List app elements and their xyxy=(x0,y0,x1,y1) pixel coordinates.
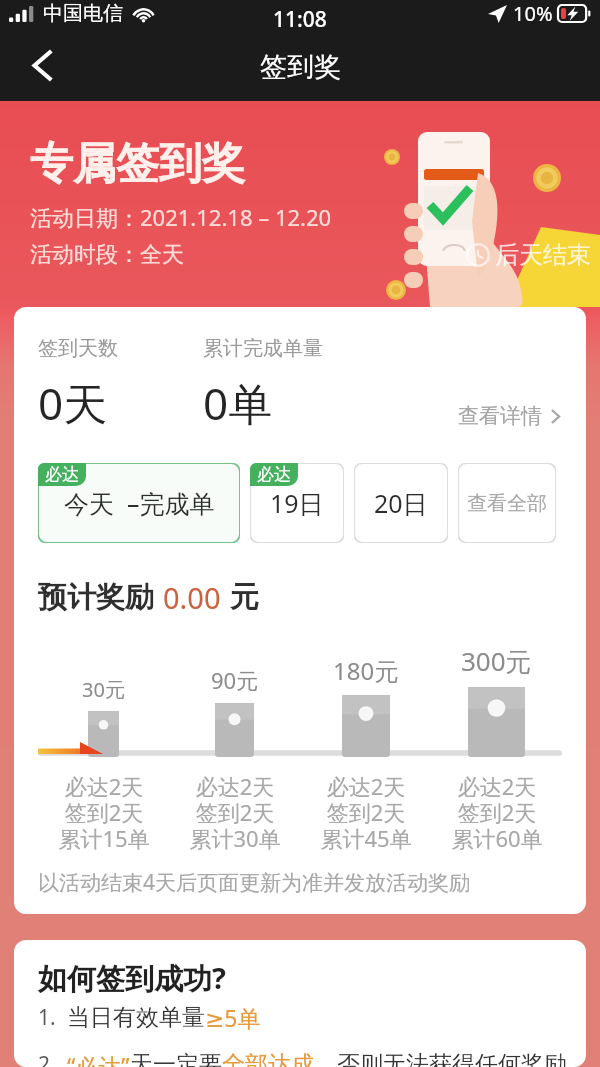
button[interactable]: 查看全部 xyxy=(458,463,556,543)
staticText: 必达2天 签到2天 累计45单 xyxy=(320,771,412,853)
staticText: 今天 –完成单 xyxy=(64,486,215,520)
staticText: ，否则无法获得任何奖励 xyxy=(314,1050,567,1067)
staticText: 以活动结束4天后页面更新为准并发放活动奖励 xyxy=(38,868,471,897)
staticText: 30元 xyxy=(82,676,125,703)
staticText: 当日有效单量 xyxy=(67,1003,205,1032)
staticText: 300元 xyxy=(461,643,532,679)
button[interactable]: 20日 xyxy=(354,463,448,543)
staticText: 查看详情 xyxy=(458,403,542,429)
staticText: 累计完成单量 xyxy=(203,336,323,361)
staticText: 20日 xyxy=(374,486,428,520)
staticText: 180元 xyxy=(333,654,399,687)
staticText: 后天结束 xyxy=(495,240,591,270)
staticText: 签到天数 xyxy=(38,336,118,361)
staticText: 0单 xyxy=(203,373,273,433)
button[interactable]: 今天 –完成单 xyxy=(38,463,240,543)
staticText: 必达 xyxy=(45,464,79,485)
staticText: 预计奖励 xyxy=(38,579,154,616)
staticText: 0天 xyxy=(38,373,108,433)
staticText: 如何签到成功? xyxy=(38,958,226,998)
button[interactable]: 19日 xyxy=(250,463,344,543)
staticText: 必达 xyxy=(257,464,291,485)
staticText: “必达” xyxy=(67,1050,130,1067)
staticText: 活动时段：全天 xyxy=(30,241,184,269)
staticText: 必达2天 签到2天 累计60单 xyxy=(451,771,543,853)
staticText: 天一定要 xyxy=(130,1050,222,1067)
button[interactable]: Back xyxy=(17,44,68,86)
staticText: 90元 xyxy=(211,665,259,695)
staticText: 2. xyxy=(38,1050,56,1067)
staticText: 19日 xyxy=(270,486,324,520)
staticText: 0.00 xyxy=(163,578,221,617)
staticText: 必达2天 签到2天 累计30单 xyxy=(189,771,281,853)
staticText: 查看全部 xyxy=(467,491,547,516)
staticText: ≥5单 xyxy=(205,1002,261,1033)
staticText: 专属签到奖 xyxy=(30,137,245,191)
staticText: 全部达成 xyxy=(222,1050,314,1067)
staticText: 活动日期：2021.12.18 – 12.20 xyxy=(30,202,332,232)
button[interactable]: 查看详情 xyxy=(458,403,562,429)
staticText: 元 xyxy=(230,579,259,616)
staticText: 中国电信 xyxy=(43,1,123,26)
staticText: 11:08 xyxy=(273,5,327,34)
staticText: 必达2天 签到2天 累计15单 xyxy=(58,771,150,853)
staticText: 10% xyxy=(513,0,553,27)
staticText: 签到奖 xyxy=(260,50,341,84)
staticText: 1. xyxy=(38,1003,56,1032)
